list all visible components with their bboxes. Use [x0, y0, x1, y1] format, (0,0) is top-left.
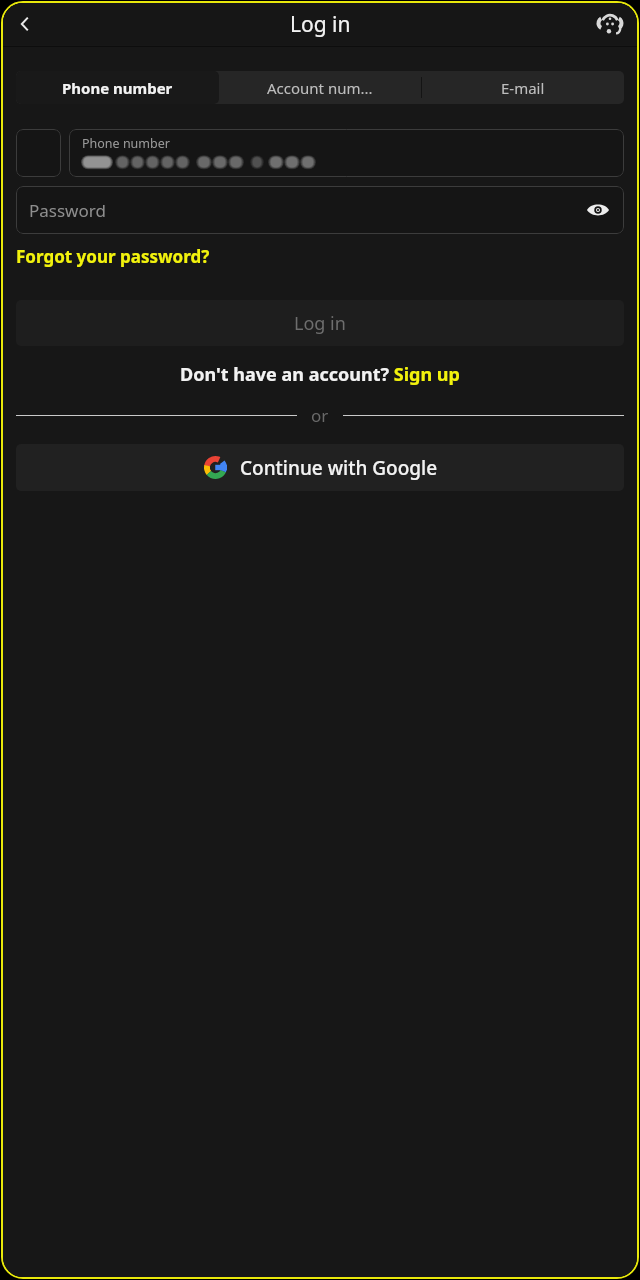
staticText: Continue with Google — [240, 455, 438, 481]
button[interactable]: E-mail — [422, 71, 624, 104]
staticText: Phone number — [82, 135, 170, 152]
button[interactable]: Back — [7, 6, 43, 42]
button[interactable]: Account num... — [219, 71, 421, 104]
button[interactable]: Forgot your password? — [16, 245, 210, 268]
button[interactable]: Country code — [16, 129, 61, 177]
button[interactable]: Phone number — [69, 129, 624, 177]
staticText: Password — [29, 199, 106, 222]
button[interactable]: Don't have an account? Sign up — [180, 362, 460, 387]
staticText: Log in — [290, 10, 351, 39]
staticText: Account num... — [267, 78, 373, 98]
staticText: Log in — [294, 311, 346, 336]
button[interactable]: Show password — [581, 193, 615, 227]
staticText: or — [311, 404, 329, 427]
staticText: Phone number — [62, 78, 173, 98]
button[interactable]: Phone number — [16, 71, 219, 104]
button[interactable]: Password — [16, 186, 624, 234]
button[interactable]: Log in — [16, 300, 624, 346]
button[interactable]: Support — [591, 5, 629, 43]
button[interactable]: Continue with Google — [16, 444, 624, 491]
staticText: E-mail — [501, 78, 545, 98]
